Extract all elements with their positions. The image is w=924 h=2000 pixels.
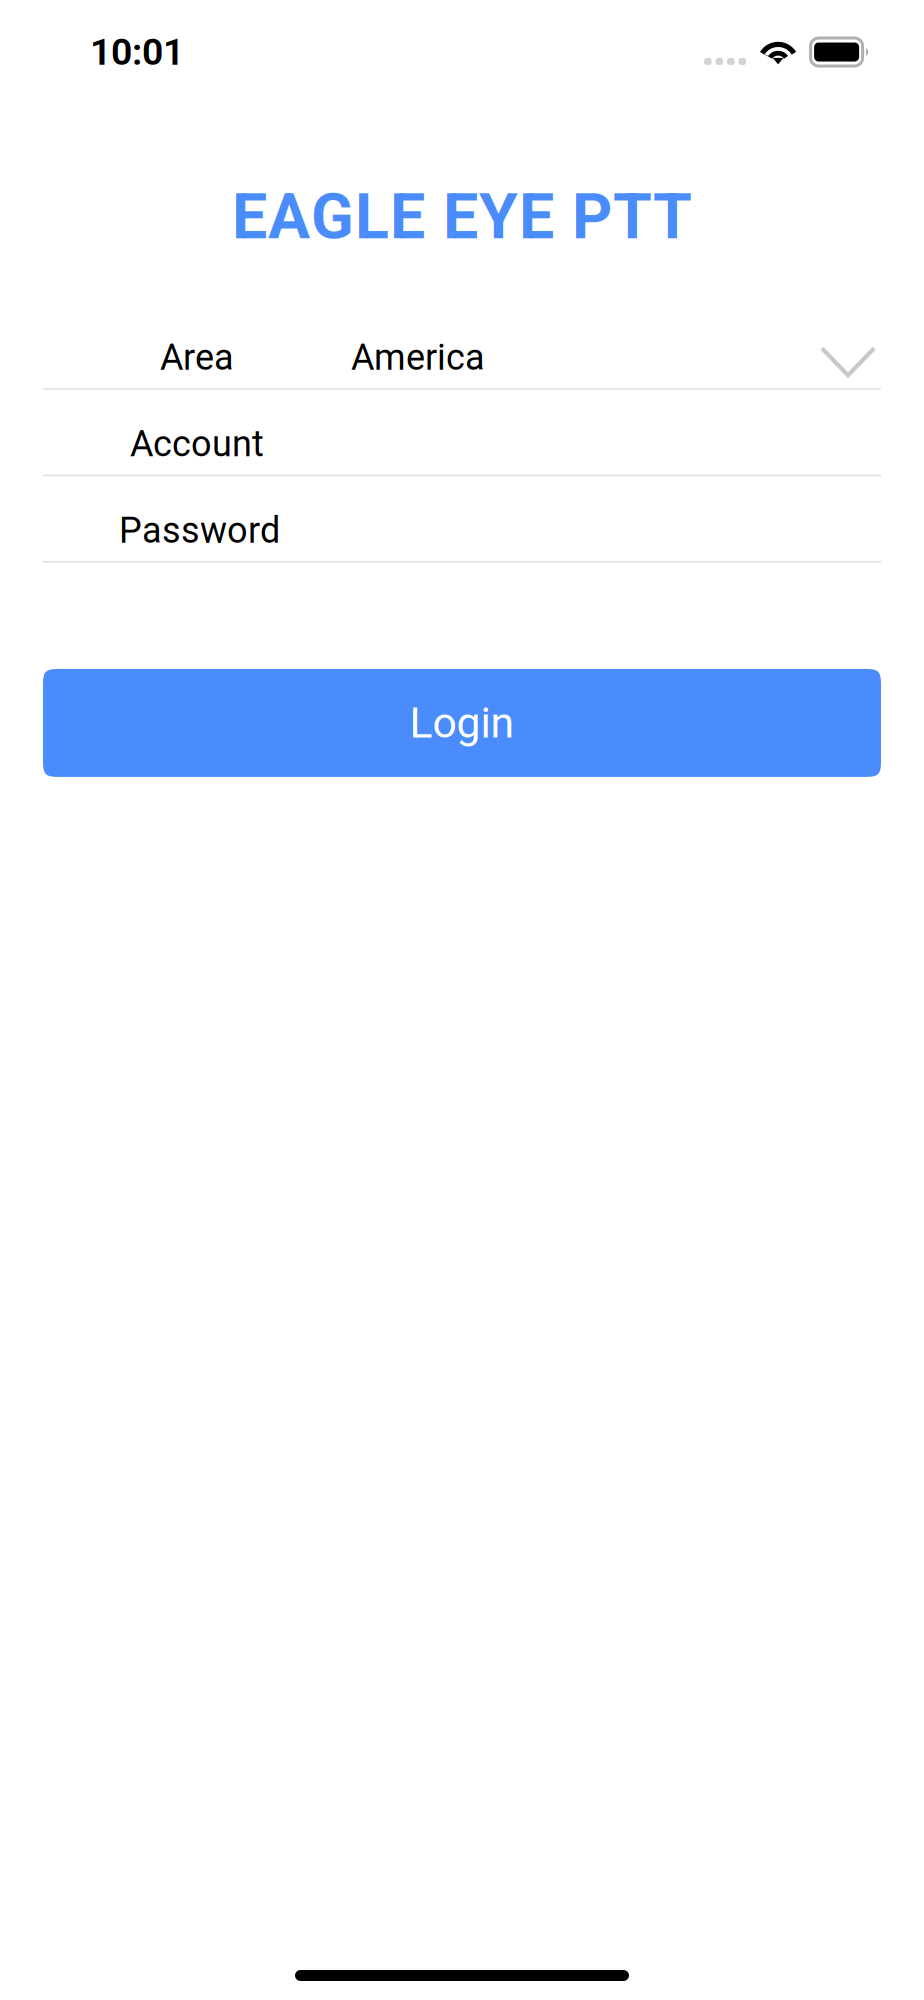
staticText: Password [119,509,280,551]
staticText: Account [130,423,264,465]
staticText: America [351,336,485,378]
staticText: Area [160,336,234,378]
staticText: 10:01 [90,30,184,74]
button[interactable]: Account [0,390,924,476]
staticText: Login [409,698,514,748]
button[interactable]: America [0,303,924,390]
button[interactable]: Password [0,476,924,563]
staticText: EAGLE EYE PTT [232,180,692,253]
button[interactable]: Login [43,669,881,777]
